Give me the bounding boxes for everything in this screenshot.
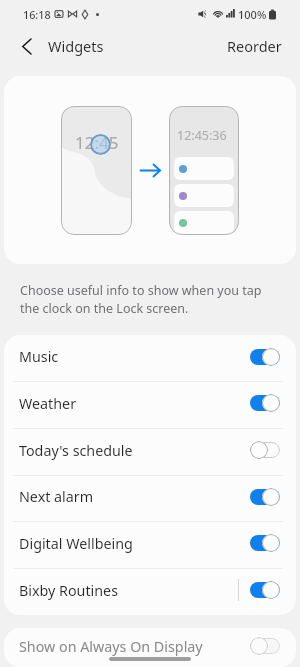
- staticText: 16:18: [23, 7, 51, 22]
- staticText: Digital Wellbeing: [19, 534, 133, 553]
- staticText: 100%: [238, 7, 267, 22]
- button[interactable]: Toggle: [250, 440, 280, 460]
- button[interactable]: Toggle: [250, 347, 280, 367]
- button[interactable]: Toggle: [250, 487, 280, 507]
- button[interactable]: Bixby Routines: [4, 568, 296, 615]
- button[interactable]: Today's schedule: [4, 428, 296, 475]
- button[interactable]: Toggle: [250, 580, 280, 600]
- button[interactable]: Music: [4, 335, 296, 381]
- button[interactable]: Reorder: [209, 28, 300, 64]
- staticText: Widgets: [48, 36, 104, 56]
- button[interactable]: Toggle: [250, 393, 280, 413]
- staticText: 12:45: [75, 131, 119, 154]
- staticText: Next alarm: [19, 487, 94, 506]
- button[interactable]: Digital Wellbeing: [4, 521, 296, 568]
- button[interactable]: Next alarm: [4, 475, 296, 521]
- button[interactable]: Toggle: [250, 533, 280, 553]
- staticText: Reorder: [227, 36, 282, 56]
- button[interactable]: Show on Always On Display: [4, 628, 296, 667]
- staticText: Bixby Routines: [19, 581, 119, 600]
- button[interactable]: Back: [10, 28, 42, 64]
- staticText: Show on Always On Display: [19, 637, 203, 656]
- staticText: Today's schedule: [19, 441, 133, 460]
- button[interactable]: Show on Always On Display toggle: [250, 636, 280, 656]
- staticText: Music: [19, 347, 59, 366]
- staticText: 12:45:36: [177, 127, 227, 144]
- staticText: Weather: [19, 394, 77, 413]
- button[interactable]: Weather: [4, 381, 296, 428]
- staticText: Choose useful info to show when you tap …: [20, 282, 278, 317]
